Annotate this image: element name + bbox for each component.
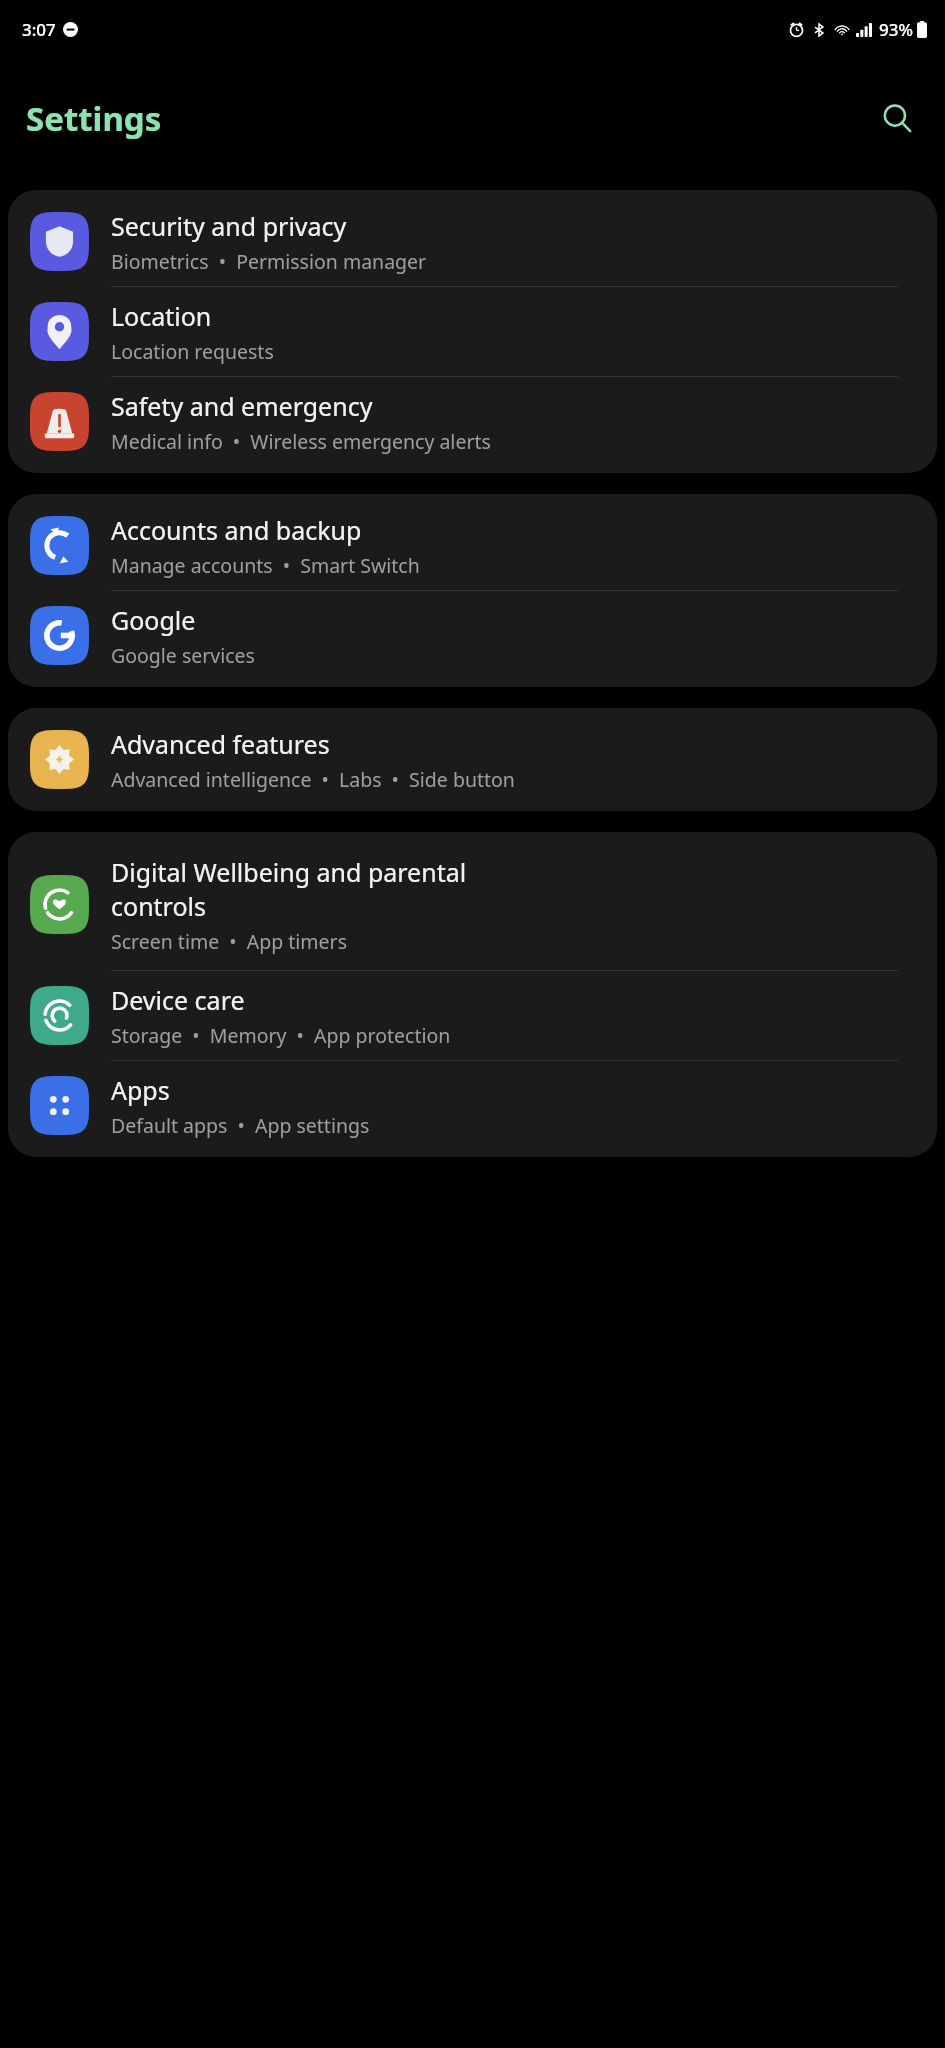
staticText: 93%: [879, 18, 913, 41]
button[interactable]: Device care: [8, 971, 937, 1060]
button[interactable]: Google: [8, 591, 937, 680]
staticText: Default apps • App settings: [111, 1112, 370, 1139]
button[interactable]: Location: [8, 287, 937, 376]
staticText: Storage • Memory • App protection: [111, 1022, 451, 1049]
staticText: Apps: [111, 1073, 170, 1107]
staticText: Screen time • App timers: [111, 928, 347, 955]
staticText: Digital Wellbeing and parental: [111, 855, 467, 889]
staticText: Security and privacy: [111, 209, 347, 243]
staticText: Device care: [111, 983, 245, 1017]
staticText: Advanced intelligence • Labs • Side butt…: [111, 766, 515, 793]
staticText: Medical info • Wireless emergency alerts: [111, 428, 491, 455]
staticText: Safety and emergency: [111, 389, 373, 423]
staticText: Google: [111, 603, 196, 637]
staticText: Advanced features: [111, 727, 330, 761]
staticText: Biometrics • Permission manager: [111, 248, 427, 275]
button[interactable]: Accounts and backup: [8, 501, 937, 590]
staticText: Settings: [26, 96, 162, 141]
staticText: Location requests: [111, 338, 274, 365]
staticText: 3:07: [22, 18, 56, 41]
button[interactable]: Advanced features: [8, 715, 937, 804]
button[interactable]: Security and privacy: [8, 197, 937, 286]
button[interactable]: Search: [869, 90, 925, 146]
button[interactable]: Digital Wellbeing and parental: [8, 839, 937, 970]
staticText: Manage accounts • Smart Switch: [111, 552, 420, 579]
staticText: Accounts and backup: [111, 513, 362, 547]
button[interactable]: Safety and emergency: [8, 377, 937, 466]
button[interactable]: Apps: [8, 1061, 937, 1150]
staticText: Google services: [111, 642, 255, 669]
staticText: controls: [111, 889, 206, 923]
staticText: Location: [111, 299, 212, 333]
